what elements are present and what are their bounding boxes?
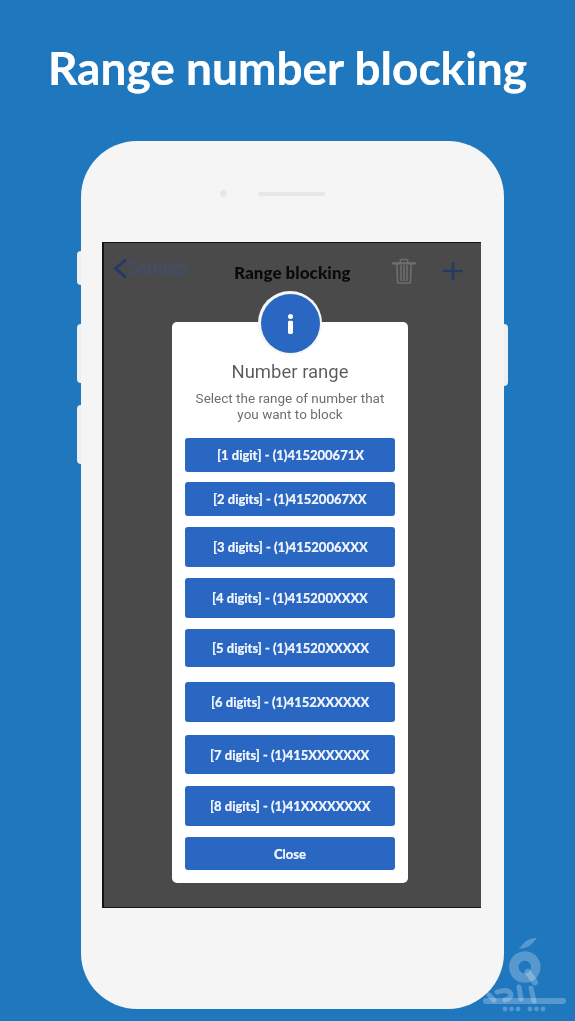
staticText: [7 digits] - (1)415XXXXXXX — [210, 747, 370, 763]
button[interactable]: [1 digit] - (1)415200671X — [185, 438, 395, 472]
button[interactable]: Add — [435, 253, 471, 289]
button[interactable]: [5 digits] - (1)41520XXXXX — [185, 629, 395, 667]
button[interactable]: Close — [185, 837, 395, 870]
staticText: Settings — [129, 257, 189, 277]
staticText: Close — [274, 846, 306, 862]
button[interactable]: [2 digits] - (1)41520067XX — [185, 482, 395, 516]
staticText: [3 digits] - (1)4152006XXX — [213, 539, 368, 555]
staticText: [8 digits] - (1)41XXXXXXXX — [210, 798, 371, 814]
button[interactable]: [3 digits] - (1)4152006XXX — [185, 527, 395, 567]
button[interactable]: Settings — [114, 243, 199, 293]
button[interactable]: Delete — [386, 253, 422, 289]
staticText: Range blocking — [234, 262, 351, 282]
staticText: [1 digit] - (1)415200671X — [217, 447, 364, 463]
staticText: [2 digits] - (1)41520067XX — [213, 491, 367, 507]
button[interactable]: [6 digits] - (1)4152XXXXXX — [185, 682, 395, 722]
staticText: [4 digits] - (1)415200XXXX — [212, 590, 368, 606]
staticText: Select the range of number that you want… — [172, 390, 408, 422]
staticText: [6 digits] - (1)4152XXXXXX — [211, 694, 370, 710]
button[interactable]: [8 digits] - (1)41XXXXXXXX — [185, 786, 395, 826]
staticText: Range number blocking — [0, 40, 575, 95]
staticText: Number range — [172, 361, 408, 383]
staticText: [5 digits] - (1)41520XXXXX — [212, 640, 369, 656]
button[interactable]: [4 digits] - (1)415200XXXX — [185, 578, 395, 618]
button[interactable]: [7 digits] - (1)415XXXXXXX — [185, 735, 395, 774]
